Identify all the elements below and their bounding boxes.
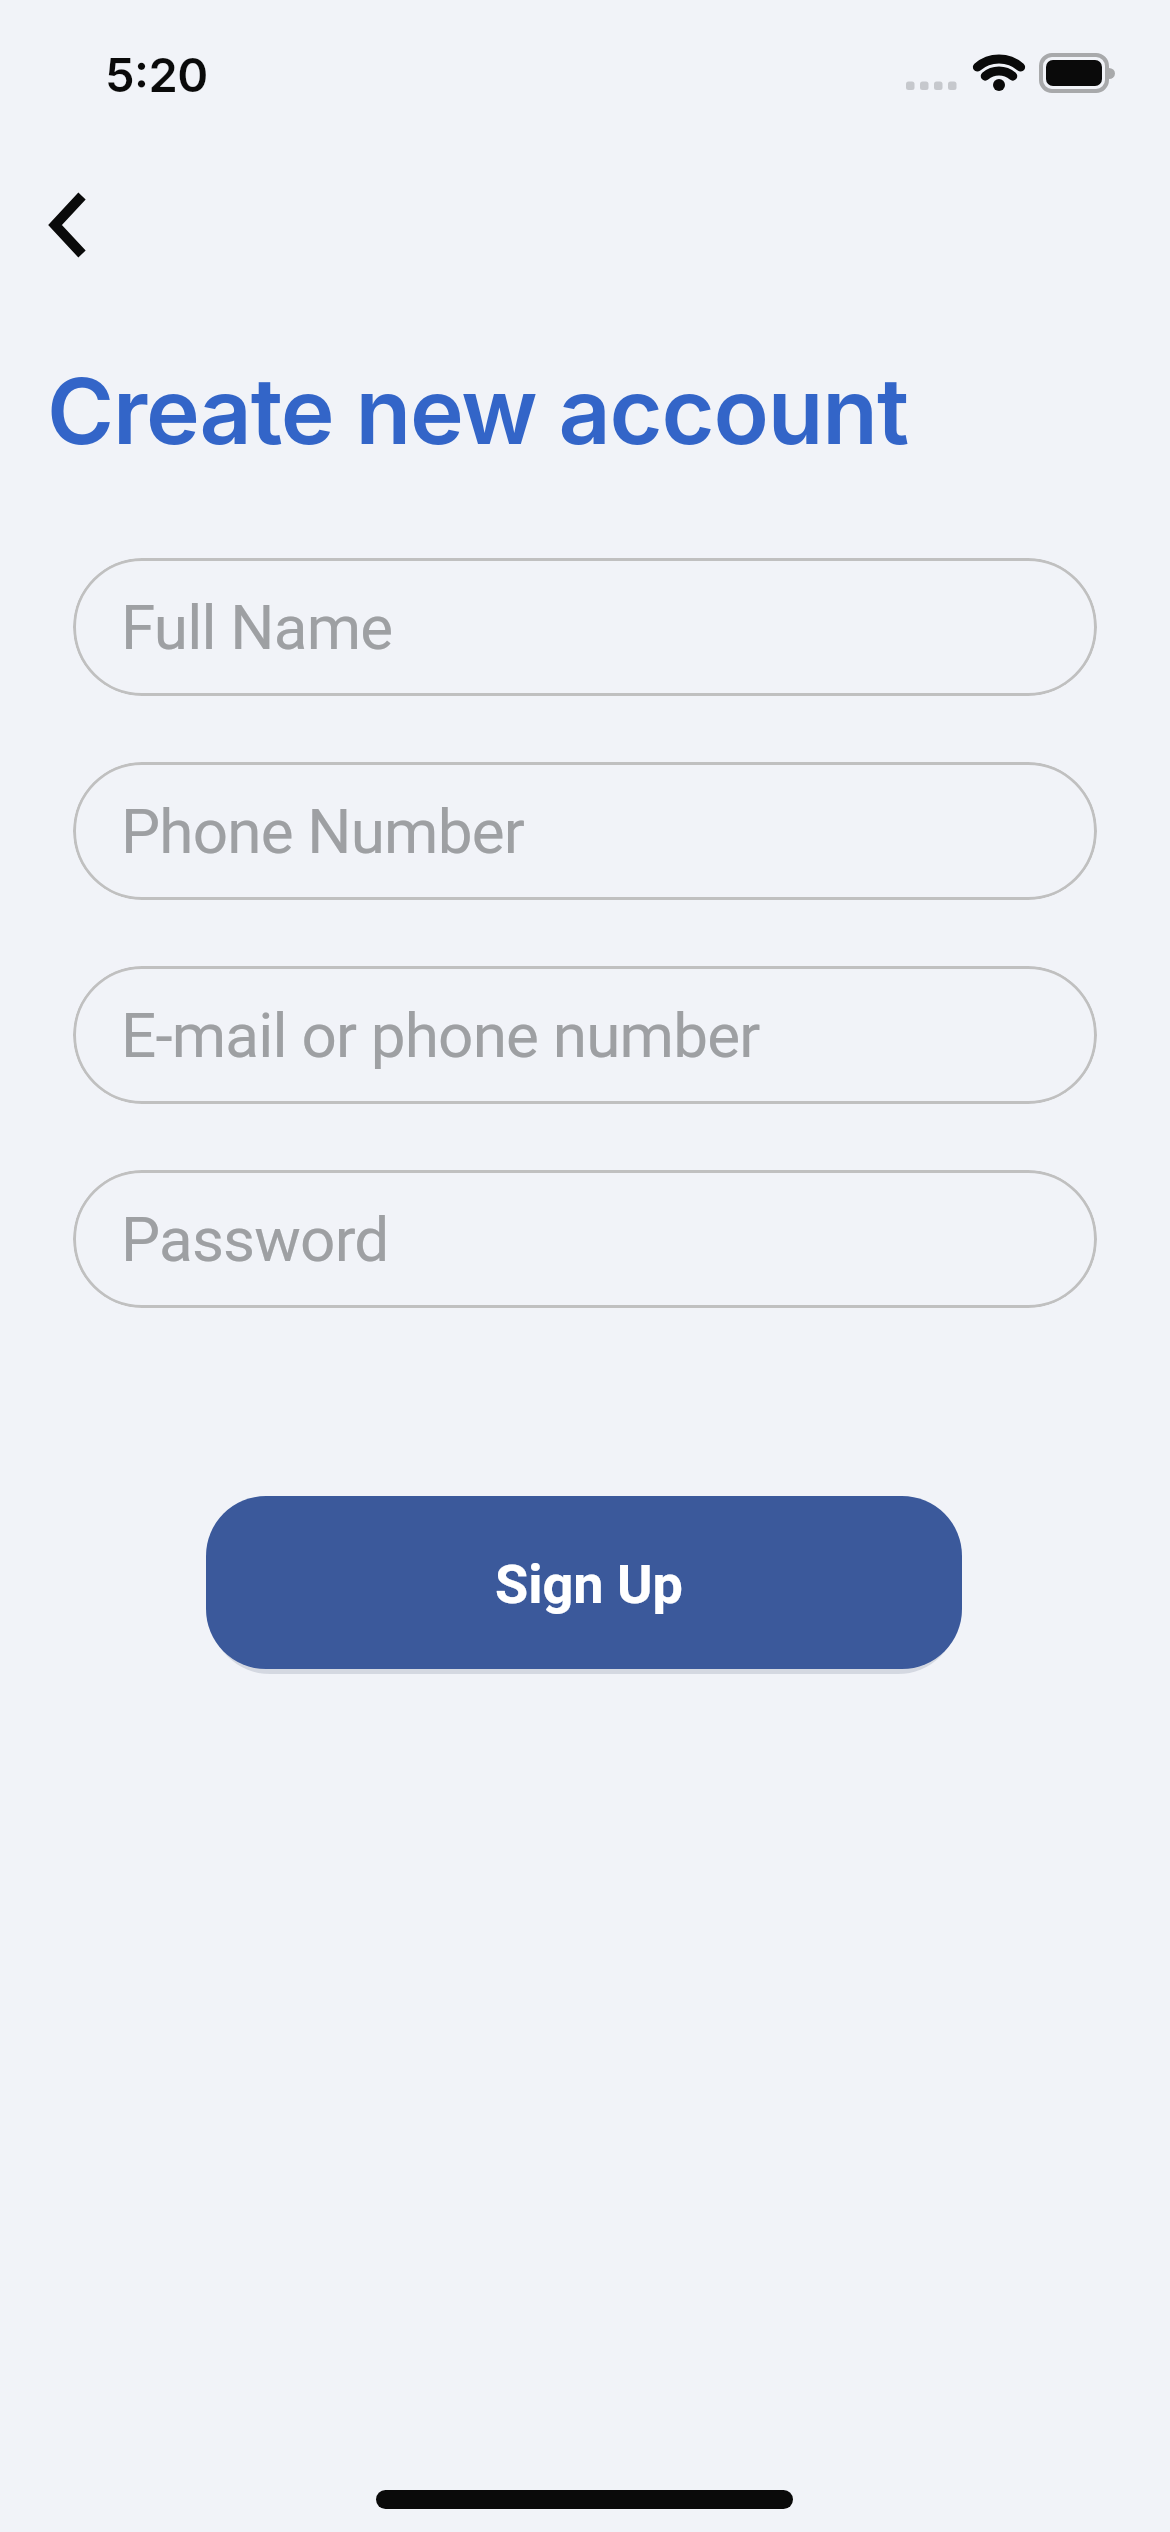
staticText: Create new account [47, 356, 908, 466]
staticText: Sign Up [495, 1553, 683, 1616]
staticText: Password [121, 1203, 389, 1276]
button[interactable]: Sign Up [206, 1496, 962, 1669]
staticText: Full Name [121, 591, 393, 664]
button[interactable]: Full Name [73, 558, 1097, 696]
button[interactable]: Phone Number [73, 762, 1097, 900]
staticText: Phone Number [121, 795, 524, 868]
staticText: E-mail or phone number [121, 999, 760, 1072]
staticText: 5:20 [105, 46, 208, 103]
button[interactable]: E-mail or phone number [73, 966, 1097, 1104]
button[interactable] [18, 175, 118, 275]
button[interactable]: Password [73, 1170, 1097, 1308]
